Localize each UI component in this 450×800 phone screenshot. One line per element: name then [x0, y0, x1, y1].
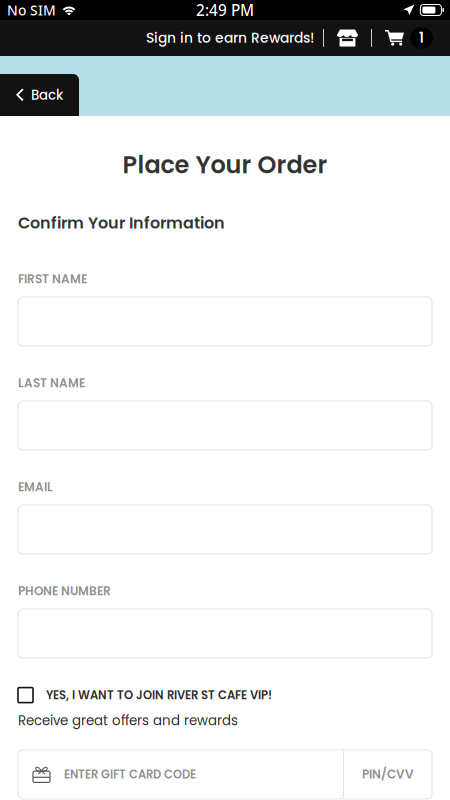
- staticText: YES, I WANT TO JOIN RIVER ST CAFE VIP!: [46, 687, 272, 703]
- button[interactable]: Store: [337, 29, 358, 46]
- staticText: LAST NAME: [18, 375, 85, 391]
- staticText: EMAIL: [18, 479, 53, 495]
- staticText: No SIM: [7, 1, 56, 19]
- staticText: Back: [31, 86, 63, 104]
- button[interactable]: ENTER GIFT CARD CODE: [18, 750, 432, 799]
- staticText: 2:49 PM: [196, 0, 254, 20]
- button[interactable]: Sign in to earn Rewards!: [146, 28, 314, 48]
- staticText: PIN/CVV: [362, 766, 414, 783]
- staticText: Place Your Order: [122, 148, 327, 182]
- staticText: ENTER GIFT CARD CODE: [64, 766, 196, 782]
- staticText: Confirm Your Information: [18, 212, 225, 234]
- staticText: PHONE NUMBER: [18, 583, 111, 599]
- staticText: FIRST NAME: [18, 271, 87, 287]
- staticText: Receive great offers and rewards: [18, 711, 238, 730]
- staticText: 1: [419, 29, 424, 47]
- button[interactable]: Cart, 1 item: [385, 27, 433, 48]
- staticText: Sign in to earn Rewards!: [146, 28, 314, 48]
- button[interactable]: YES, I WANT TO JOIN RIVER ST CAFE VIP!: [18, 687, 432, 703]
- button[interactable]: Back: [0, 74, 79, 116]
